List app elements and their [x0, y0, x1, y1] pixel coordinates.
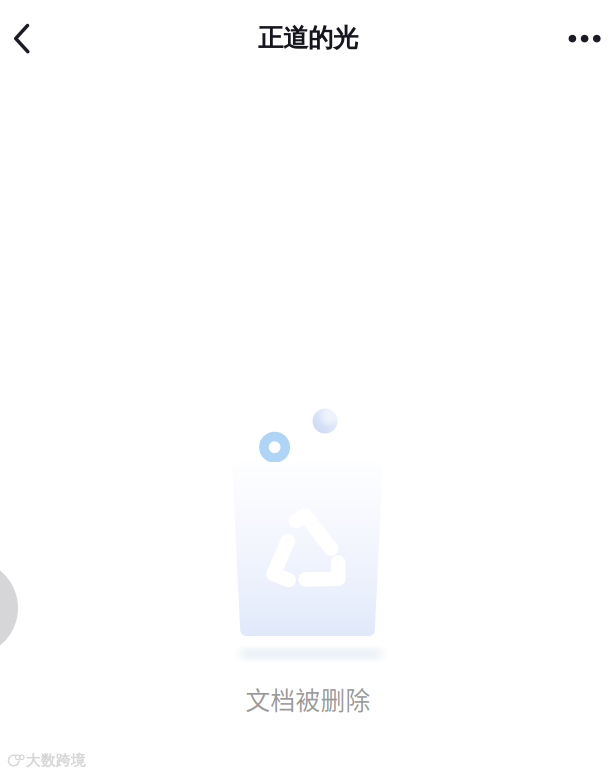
- staticText: 正道的光: [258, 22, 358, 54]
- staticText: 大数跨境: [26, 751, 86, 770]
- button[interactable]: More options: [558, 11, 612, 67]
- staticText: 文档被删除: [245, 681, 370, 717]
- button[interactable]: Assistant: [0, 560, 18, 656]
- button[interactable]: Back: [0, 10, 46, 66]
